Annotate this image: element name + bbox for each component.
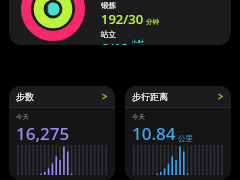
staticText: 192/30: [101, 10, 144, 28]
staticText: 今天: [16, 113, 29, 121]
staticText: 锻炼: [101, 1, 116, 10]
staticText: 分钟: [146, 18, 159, 26]
staticText: 6/12: [101, 39, 129, 45]
button[interactable]: 活动: [9, 0, 231, 45]
staticText: 10.84: [132, 122, 176, 145]
staticText: 公里: [178, 134, 193, 143]
staticText: 步行距离: [132, 91, 217, 102]
staticText: 今天: [132, 113, 145, 121]
staticText: 小时: [131, 39, 144, 43]
staticText: 站立: [101, 30, 116, 39]
staticText: 16,275: [16, 122, 70, 145]
staticText: 步数: [16, 91, 101, 102]
button[interactable]: 步数: [9, 86, 115, 180]
button[interactable]: 步行距离: [125, 86, 231, 180]
